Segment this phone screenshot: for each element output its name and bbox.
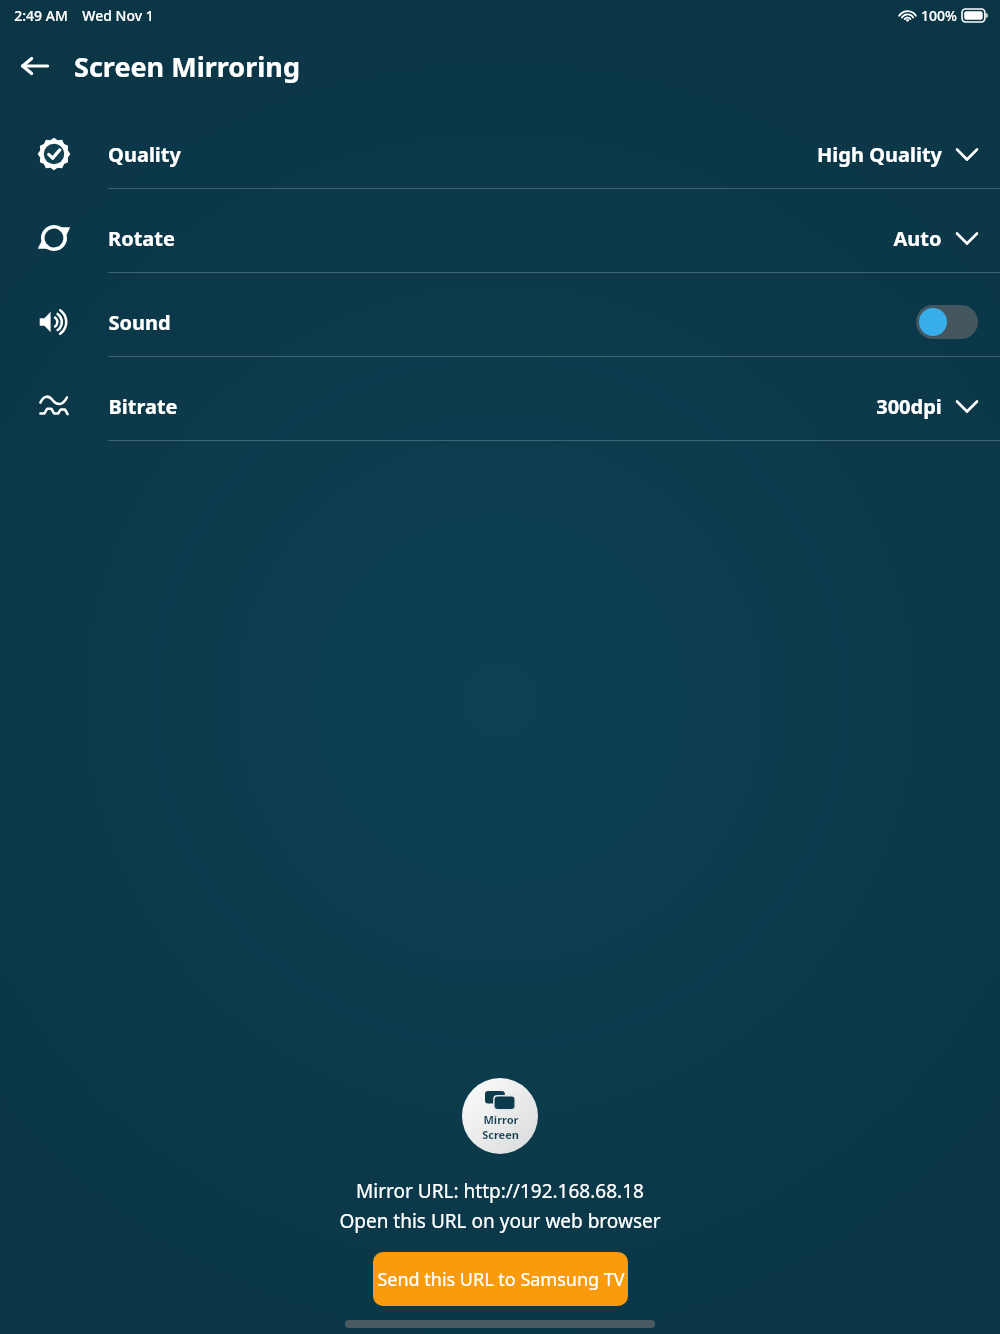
button[interactable]: Mirror Screen [462, 1078, 538, 1154]
staticText: High Quality [817, 141, 942, 168]
button[interactable]: Send this URL to Samsung TV [373, 1252, 628, 1306]
staticText: 300dpi [876, 393, 942, 420]
staticText: Auto [893, 225, 942, 252]
staticText: Wed Nov 1 [82, 6, 154, 25]
staticText: Open this URL on your web browser [339, 1208, 661, 1234]
staticText: Quality [108, 141, 181, 168]
staticText: Sound [108, 309, 171, 336]
staticText: Rotate [108, 225, 175, 252]
staticText: Mirror [483, 1112, 519, 1127]
staticText: Screen [482, 1127, 519, 1142]
staticText: Screen Mirroring [74, 48, 300, 85]
button[interactable]: Sound [0, 288, 1000, 372]
button[interactable]: Quality [0, 120, 1000, 204]
staticText: Mirror URL: http://192.168.68.18 [356, 1178, 644, 1204]
staticText: Bitrate [108, 393, 178, 420]
button[interactable]: Bitrate [0, 372, 1000, 456]
button[interactable]: Back [12, 43, 58, 89]
staticText: 100% [921, 6, 957, 25]
button[interactable]: Rotate [0, 204, 1000, 288]
button[interactable]: Sound toggle [916, 305, 978, 339]
staticText: 2:49 AM [14, 6, 68, 25]
staticText: Send this URL to Samsung TV [377, 1267, 625, 1292]
